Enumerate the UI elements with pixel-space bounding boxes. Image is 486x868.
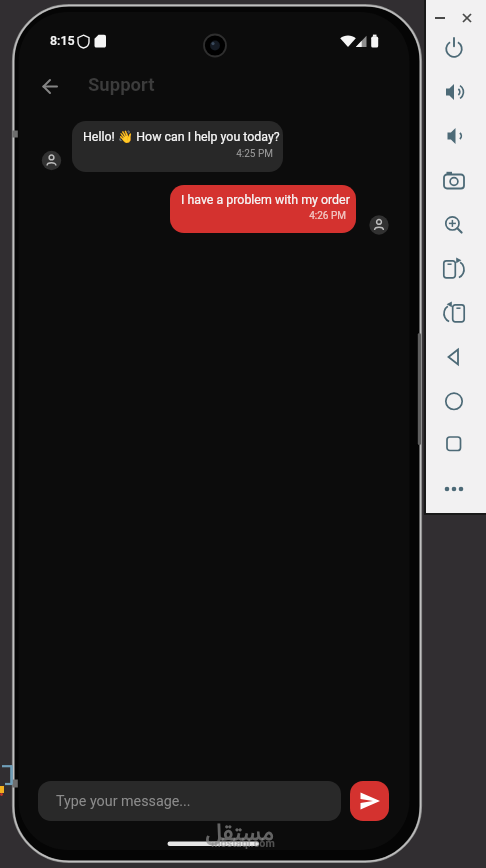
staticText: Hello! 👋 How can I help you today? <box>83 129 273 144</box>
staticText: 4:25 PM <box>83 148 273 160</box>
staticText: 4:26 PM <box>181 210 346 222</box>
button[interactable] <box>437 31 471 65</box>
button[interactable] <box>36 73 64 101</box>
staticText: Type your message... <box>56 793 191 810</box>
button[interactable]: Type your message... <box>38 781 341 821</box>
button[interactable] <box>437 164 471 198</box>
button[interactable] <box>457 8 477 28</box>
staticText: I have a problem with my order <box>181 192 346 207</box>
button[interactable] <box>437 472 471 506</box>
button[interactable] <box>437 384 471 418</box>
button[interactable] <box>437 119 471 153</box>
staticText: Support <box>88 74 155 96</box>
button[interactable] <box>437 252 471 286</box>
button[interactable] <box>350 781 389 821</box>
button[interactable] <box>437 340 471 374</box>
button[interactable] <box>437 75 471 109</box>
staticText: مستقل <box>200 808 280 857</box>
button[interactable] <box>437 428 471 462</box>
button[interactable] <box>430 8 450 28</box>
staticText: mostaql.com <box>203 837 283 850</box>
button[interactable] <box>437 208 471 242</box>
staticText: 8:15 <box>50 33 75 48</box>
button[interactable] <box>437 296 471 330</box>
